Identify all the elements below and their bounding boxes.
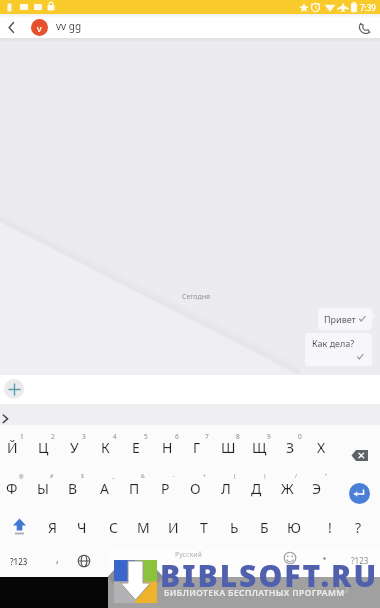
button[interactable]: В bbox=[59, 478, 87, 498]
staticText: Б bbox=[260, 518, 269, 537]
button[interactable]: Привет bbox=[318, 308, 372, 330]
button[interactable]: ?123 bbox=[347, 552, 373, 568]
staticText: П bbox=[129, 479, 140, 498]
button[interactable]: Б bbox=[250, 517, 278, 537]
button[interactable] bbox=[356, 17, 376, 37]
button[interactable] bbox=[76, 553, 92, 569]
staticText: Ы bbox=[37, 479, 49, 498]
button[interactable]: Ч bbox=[68, 517, 96, 537]
staticText: 3 bbox=[82, 432, 86, 441]
staticText: Ь bbox=[230, 518, 239, 537]
staticText: 8 bbox=[236, 432, 240, 441]
button[interactable] bbox=[2, 15, 20, 37]
button[interactable]: П bbox=[120, 478, 148, 498]
staticText: 1 bbox=[20, 432, 24, 441]
button[interactable]: ! bbox=[316, 517, 344, 537]
button[interactable]: Как дела? bbox=[305, 333, 372, 366]
staticText: М bbox=[137, 518, 150, 537]
staticText: 2 bbox=[51, 432, 55, 441]
button[interactable]: Х bbox=[307, 437, 335, 457]
staticText: Д bbox=[251, 479, 262, 498]
button[interactable]: Ь bbox=[220, 517, 248, 537]
staticText: У bbox=[70, 438, 79, 457]
button[interactable]: Й bbox=[0, 437, 26, 457]
button[interactable]: Щ bbox=[245, 437, 273, 457]
staticText: Г bbox=[193, 438, 201, 457]
staticText: - bbox=[173, 473, 175, 480]
button[interactable]: А bbox=[90, 478, 118, 498]
staticText: Привет bbox=[324, 313, 356, 325]
button[interactable]: Ц bbox=[29, 437, 57, 457]
staticText: Ц bbox=[38, 438, 49, 457]
button[interactable]: Ш bbox=[214, 437, 242, 457]
staticText: Р bbox=[161, 479, 170, 498]
staticText: Л bbox=[221, 479, 231, 498]
button[interactable] bbox=[6, 515, 33, 539]
staticText: И bbox=[168, 518, 179, 537]
button[interactable]: Я bbox=[38, 517, 66, 537]
button[interactable]: Г bbox=[183, 437, 211, 457]
button[interactable]: , bbox=[49, 551, 65, 567]
staticText: / bbox=[295, 473, 297, 480]
button[interactable]: Ж bbox=[273, 478, 301, 498]
staticText: vv gg bbox=[56, 19, 82, 33]
button[interactable]: Ы bbox=[29, 478, 57, 498]
button[interactable]: К bbox=[91, 437, 119, 457]
staticText: А bbox=[100, 479, 109, 498]
button[interactable] bbox=[282, 550, 298, 566]
button[interactable]: Р bbox=[151, 478, 179, 498]
button[interactable]: З bbox=[276, 437, 304, 457]
staticText: В bbox=[68, 479, 78, 498]
button[interactable] bbox=[349, 483, 370, 504]
button[interactable]: Ю bbox=[280, 517, 308, 537]
button[interactable]: С bbox=[99, 517, 127, 537]
staticText: 6 bbox=[175, 432, 179, 441]
staticText: Ф bbox=[6, 479, 18, 498]
staticText: З bbox=[286, 438, 295, 457]
staticText: " bbox=[325, 473, 328, 480]
staticText: К bbox=[101, 438, 110, 457]
staticText: 7 bbox=[205, 432, 209, 441]
button[interactable]: М bbox=[129, 517, 157, 537]
staticText: ( bbox=[234, 473, 236, 480]
staticText: # bbox=[50, 473, 54, 480]
staticText: Ж bbox=[281, 479, 294, 498]
staticText: 7:39 bbox=[360, 2, 376, 13]
button[interactable]: У bbox=[60, 437, 88, 457]
staticText: Ю bbox=[287, 518, 301, 537]
staticText: Я bbox=[48, 518, 57, 537]
staticText: v bbox=[37, 22, 42, 34]
button[interactable]: И bbox=[159, 517, 187, 537]
button[interactable] bbox=[4, 379, 24, 399]
button[interactable]: v bbox=[31, 19, 48, 36]
staticText: Е bbox=[132, 438, 140, 457]
button[interactable]: ? bbox=[344, 517, 372, 537]
staticText: ? bbox=[355, 518, 362, 537]
staticText: @ bbox=[19, 473, 24, 480]
staticText: БИБЛИОТЕКА БЕСПЛАТНЫХ ПРОГРАММ bbox=[164, 587, 345, 599]
button[interactable]: Д bbox=[242, 478, 270, 498]
staticText: Щ bbox=[252, 438, 267, 457]
staticText: Х bbox=[317, 438, 326, 457]
button[interactable]: Е bbox=[122, 437, 150, 457]
button[interactable] bbox=[0, 411, 16, 427]
staticText: , bbox=[56, 552, 59, 566]
staticText: Как дела? bbox=[312, 337, 355, 349]
staticText: 4 bbox=[113, 432, 117, 441]
button[interactable]: Э bbox=[303, 478, 331, 498]
staticText: & bbox=[141, 473, 145, 480]
staticText: ?123 bbox=[10, 556, 28, 567]
staticText: Й bbox=[7, 438, 18, 457]
staticText: С bbox=[109, 518, 118, 537]
staticText: ?123 bbox=[351, 555, 369, 566]
button[interactable] bbox=[347, 446, 377, 464]
button[interactable]: Л bbox=[212, 478, 240, 498]
button[interactable]: Н bbox=[153, 437, 181, 457]
button[interactable]: Ф bbox=[0, 478, 26, 498]
staticText: + bbox=[203, 473, 206, 480]
staticText: Н bbox=[162, 438, 173, 457]
button[interactable]: ?123 bbox=[6, 553, 32, 569]
staticText: ) bbox=[264, 473, 266, 480]
button[interactable]: О bbox=[181, 478, 209, 498]
button[interactable]: Т bbox=[190, 517, 218, 537]
